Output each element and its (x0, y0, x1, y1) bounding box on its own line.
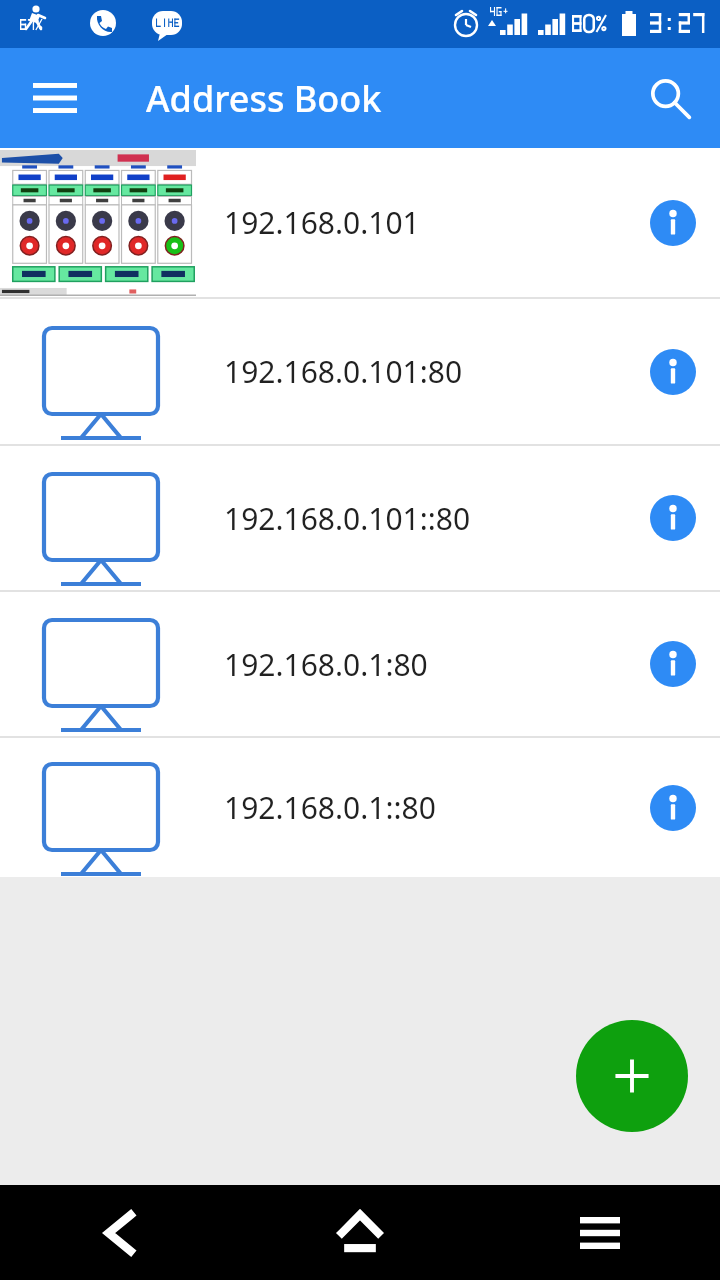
button[interactable]: Back (0, 1185, 240, 1280)
staticText: 192.168.0.1::80 (224, 787, 650, 828)
button[interactable]: 192.168.0.101 (0, 148, 720, 297)
staticText: 192.168.0.1:80 (224, 644, 650, 685)
button[interactable]: 192.168.0.1:80 (0, 592, 720, 736)
button[interactable]: Info (650, 200, 696, 246)
staticText: Address Book (146, 74, 382, 123)
button[interactable]: 192.168.0.101:80 (0, 299, 720, 444)
staticText: 192.168.0.101 (224, 202, 650, 243)
button[interactable]: 192.168.0.101::80 (0, 446, 720, 590)
button[interactable]: Home (240, 1185, 480, 1280)
staticText: 192.168.0.101::80 (224, 498, 650, 539)
button[interactable]: Search (638, 66, 702, 130)
button[interactable]: Info (650, 495, 696, 541)
button[interactable]: Open navigation menu (22, 65, 88, 131)
button[interactable]: 192.168.0.1::80 (0, 738, 720, 877)
button[interactable]: Info (650, 785, 696, 831)
staticText: 192.168.0.101:80 (224, 351, 650, 392)
button[interactable]: Info (650, 641, 696, 687)
button[interactable]: Info (650, 349, 696, 395)
button[interactable]: Add address (576, 1020, 688, 1132)
button[interactable]: Recent apps (480, 1185, 720, 1280)
